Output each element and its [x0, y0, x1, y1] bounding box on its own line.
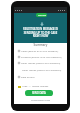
button[interactable]: SECURE [36, 13, 47, 17]
staticText: SEND DATA [32, 91, 46, 95]
staticText: Confirmation code [14, 99, 67, 102]
staticText: Other names (Exactly as in passport) [21, 62, 61, 65]
staticText: Summary [14, 43, 67, 47]
staticText: Other names (Exactly as in passport) [22, 69, 62, 72]
staticText: REGISTRATION MESSAGE IS SENDING UP TO TH… [14, 27, 67, 37]
staticText: Date of birth [21, 76, 35, 79]
button[interactable]: Date of birth [18, 75, 35, 79]
button[interactable]: SEND DATA [25, 90, 53, 96]
staticText: Surname (Exactly as in your passport) [21, 56, 62, 59]
button[interactable]: Other names (Exactly as in passport) [18, 68, 62, 72]
button[interactable]: +380 — Mobile number [18, 85, 49, 88]
staticText: SECURE [38, 14, 46, 17]
button[interactable]: Other names (Exactly as in passport) [18, 61, 61, 65]
staticText: +380 — Mobile number [22, 85, 49, 88]
button[interactable]: Surname (Exactly as in your passport) [18, 55, 62, 59]
button[interactable]: Name (Exactly as in your passport) [18, 49, 59, 53]
staticText: Name (Exactly as in your passport) [21, 50, 59, 53]
